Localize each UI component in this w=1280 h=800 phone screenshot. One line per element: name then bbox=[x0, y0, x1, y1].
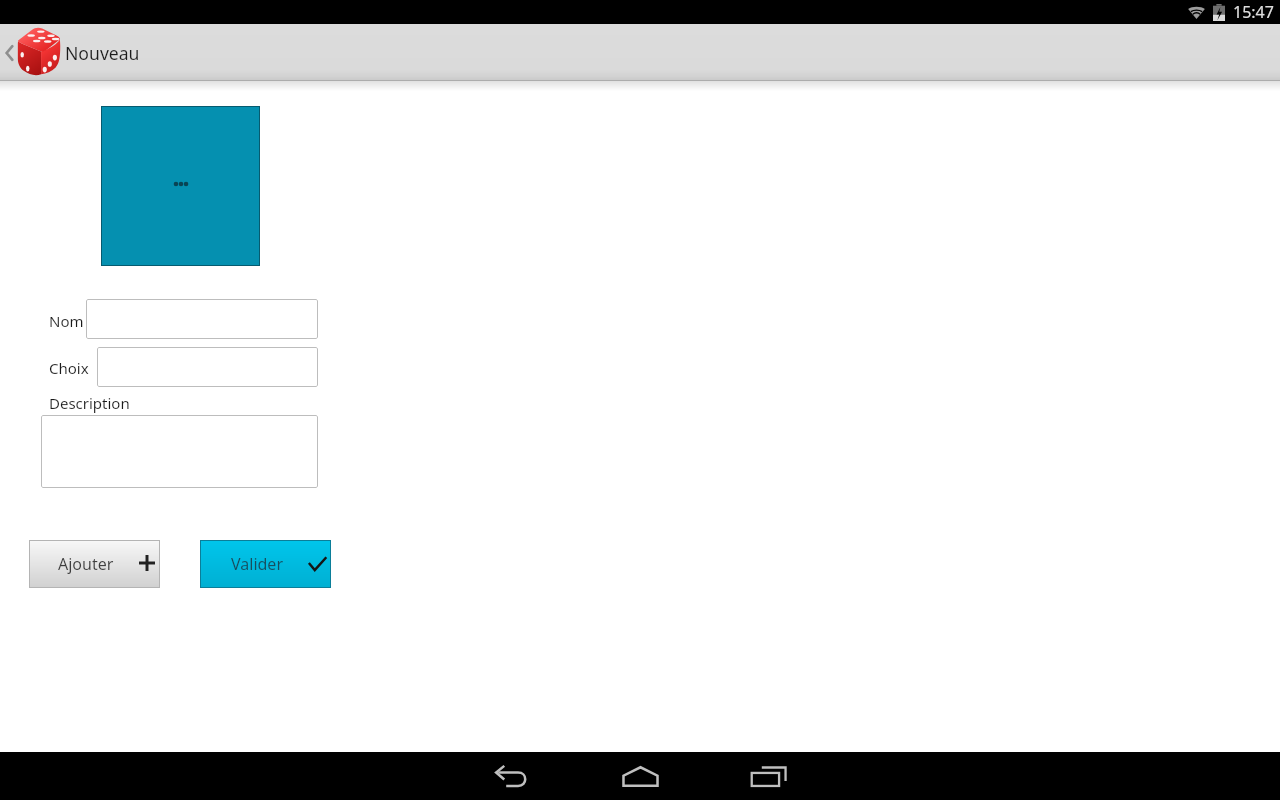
button[interactable] bbox=[41, 415, 318, 488]
staticText: Valider bbox=[231, 553, 283, 575]
staticText: Choix bbox=[49, 358, 89, 378]
button[interactable]: Choisir une image bbox=[101, 106, 260, 266]
button[interactable]: Valider bbox=[200, 540, 331, 588]
button[interactable] bbox=[86, 299, 318, 339]
staticText: Ajouter bbox=[58, 553, 114, 575]
staticText: Description bbox=[49, 393, 130, 413]
button[interactable]: Nouveau bbox=[0, 24, 152, 81]
button[interactable]: Home bbox=[577, 752, 703, 800]
button[interactable] bbox=[97, 347, 318, 387]
button[interactable]: Ajouter bbox=[29, 540, 160, 588]
staticText: 15:47 bbox=[1233, 1, 1274, 23]
staticText: Nom bbox=[49, 311, 84, 331]
button[interactable]: Recent apps bbox=[706, 752, 832, 800]
staticText: Nouveau bbox=[65, 41, 140, 65]
button[interactable]: Back bbox=[448, 752, 574, 800]
